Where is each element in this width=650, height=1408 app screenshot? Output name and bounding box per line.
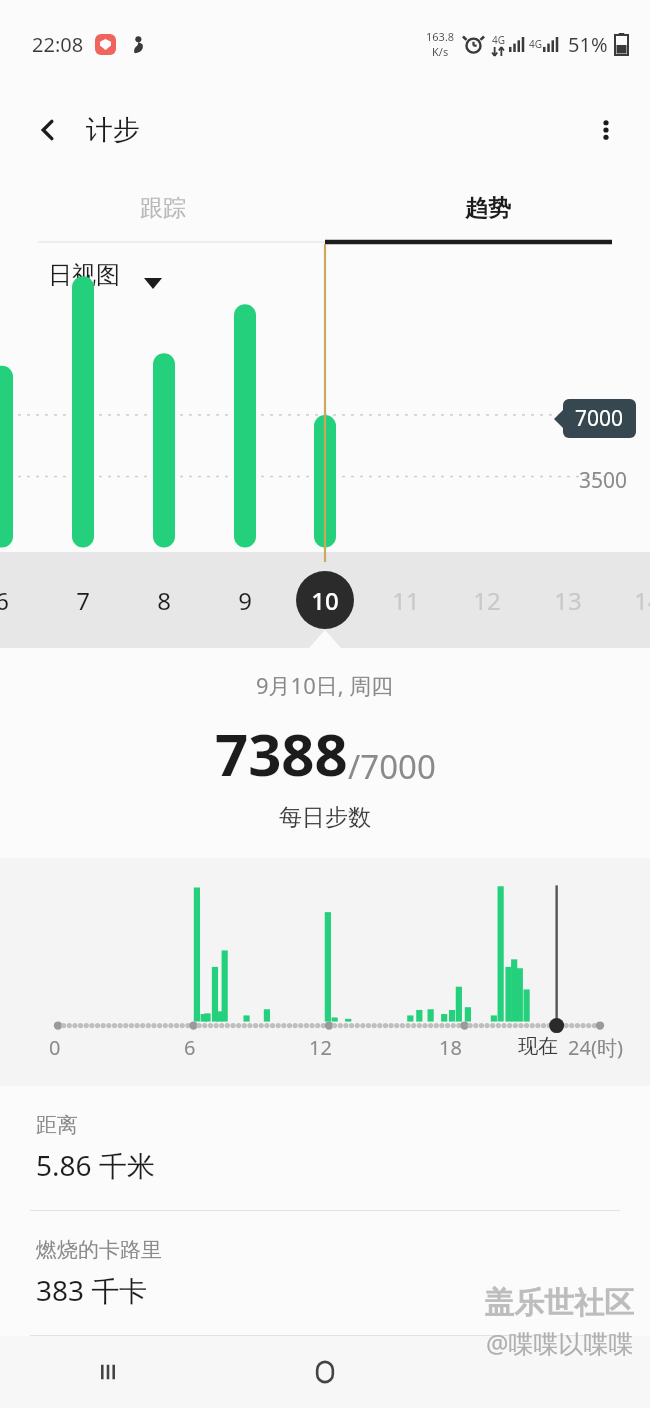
button[interactable]: Change view [140,270,166,296]
button[interactable]: Back [22,104,74,156]
button[interactable]: 8 [130,566,198,634]
staticText: K/s [432,44,449,59]
staticText: 3500 [579,466,628,495]
button[interactable]: 11 [372,566,440,634]
staticText: 9 [238,584,252,617]
button[interactable]: 12 [453,566,521,634]
staticText: 计步 [86,113,140,147]
staticText: 24(时) [568,1034,623,1061]
staticText: 18 [439,1034,462,1061]
staticText: 7 [76,584,90,617]
staticText: 11 [392,584,420,617]
button[interactable]: Back [433,1336,650,1408]
staticText: 12 [473,584,501,617]
button[interactable]: 13 [534,566,602,634]
button[interactable]: 跟踪 [0,172,325,244]
staticText: 日视图 [48,260,120,290]
staticText: 7000 [575,404,624,433]
button[interactable]: 14 [614,566,650,634]
staticText: 13 [554,584,582,617]
staticText: 10 [311,584,339,617]
staticText: 现在 [518,1034,558,1059]
staticText: 距离 [36,1112,78,1138]
button[interactable]: 燃烧的卡路里 [0,1211,650,1336]
staticText: 383 千卡 [36,1271,148,1309]
staticText: 12 [309,1034,332,1061]
staticText: /7000 [348,744,436,789]
button[interactable]: 趋势 [325,172,650,244]
staticText: 51% [568,31,608,58]
staticText: 每日步数 [279,803,371,832]
button[interactable]: 7 [49,566,117,634]
button[interactable]: More options [580,104,632,156]
button[interactable]: Home [216,1336,433,1408]
staticText: 9月10日, 周四 [256,670,394,700]
staticText: 4G [529,37,542,51]
staticText: 14 [634,584,650,617]
button[interactable]: 距离 [0,1086,650,1211]
staticText: 4G [492,33,505,47]
staticText: 22:08 [32,31,84,58]
button[interactable]: 9 [211,566,279,634]
staticText: 盖乐世社区 [484,1284,634,1322]
staticText: @喋喋以喋喋 [486,1326,634,1360]
staticText: 163.8 [426,29,455,44]
staticText: 6 [0,584,9,617]
staticText: 燃烧的卡路里 [36,1237,162,1263]
button[interactable]: Recents [0,1336,216,1408]
staticText: 8 [157,584,171,617]
button[interactable]: 10 [291,566,359,634]
staticText: 6 [184,1034,196,1061]
button[interactable]: 6 [0,566,36,634]
staticText: 7388 [215,714,348,793]
staticText: 5.86 千米 [36,1146,155,1184]
staticText: 0 [49,1034,61,1061]
staticText: 趋势 [465,194,511,223]
staticText: 跟踪 [140,194,186,223]
